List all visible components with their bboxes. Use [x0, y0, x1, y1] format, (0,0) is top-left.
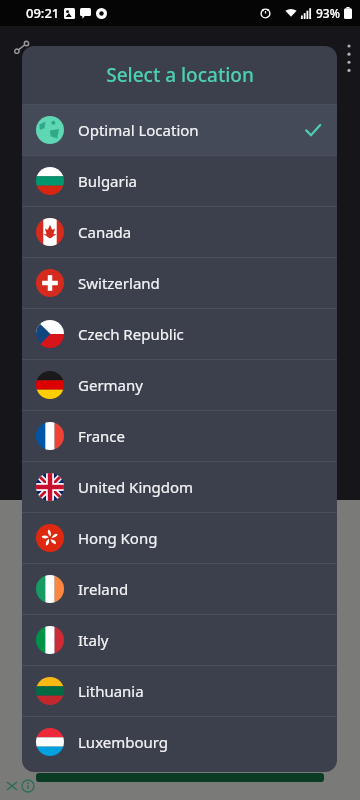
- button[interactable]: Canada: [22, 207, 337, 257]
- staticText: Canada: [78, 222, 132, 242]
- button[interactable]: Ireland: [22, 564, 337, 614]
- button[interactable]: Bulgaria: [22, 156, 337, 206]
- button[interactable]: Hong Kong: [22, 513, 337, 563]
- staticText: Switzerland: [78, 273, 160, 293]
- staticText: Hong Kong: [78, 528, 158, 548]
- staticText: Ireland: [78, 579, 129, 599]
- button[interactable]: France: [22, 411, 337, 461]
- button[interactable]: Luxembourg: [22, 717, 337, 767]
- staticText: Czech Republic: [78, 324, 184, 344]
- staticText: Select a location: [106, 62, 254, 88]
- staticText: Lithuania: [78, 681, 144, 701]
- staticText: United Kingdom: [78, 477, 194, 497]
- staticText: Italy: [78, 630, 109, 650]
- button[interactable]: Czech Republic: [22, 309, 337, 359]
- button[interactable]: Optimal Location: [22, 105, 337, 155]
- staticText: France: [78, 426, 126, 446]
- button[interactable]: Lithuania: [22, 666, 337, 716]
- button[interactable]: Italy: [22, 615, 337, 665]
- button[interactable]: United Kingdom: [22, 462, 337, 512]
- staticText: 09:21: [26, 4, 60, 22]
- staticText: 93%: [316, 5, 340, 21]
- staticText: Bulgaria: [78, 171, 138, 191]
- button[interactable]: Switzerland: [22, 258, 337, 308]
- staticText: Germany: [78, 375, 143, 395]
- staticText: Optimal Location: [78, 120, 199, 140]
- button[interactable]: Germany: [22, 360, 337, 410]
- staticText: Luxembourg: [78, 732, 169, 752]
